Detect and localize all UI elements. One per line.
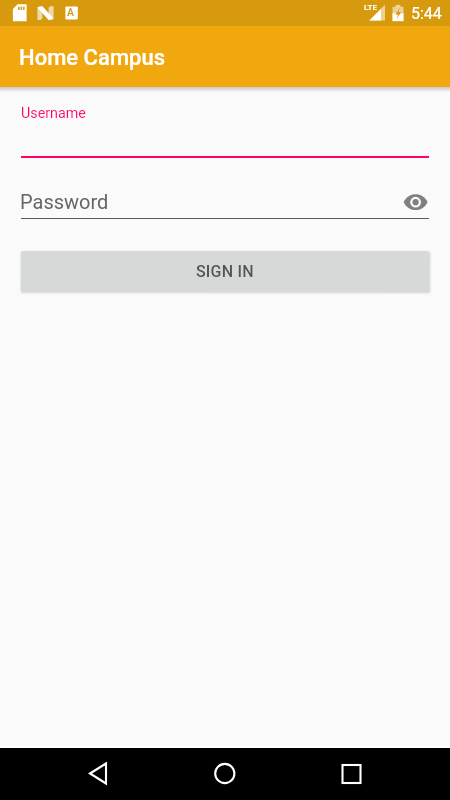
button[interactable]: Back	[76, 748, 120, 800]
button[interactable]: SIGN IN	[21, 251, 429, 292]
button[interactable]: Home	[203, 748, 247, 800]
staticText: LTE	[364, 3, 377, 12]
button[interactable]: Recent apps	[329, 748, 373, 800]
staticText: Username	[21, 105, 86, 122]
staticText: Password	[20, 190, 109, 213]
button[interactable]	[21, 186, 391, 218]
button[interactable]: Show password	[400, 187, 430, 217]
staticText: SIGN IN	[196, 262, 254, 281]
staticText: 5:44	[411, 4, 442, 23]
staticText: Home Campus	[19, 45, 166, 71]
button[interactable]	[21, 104, 429, 158]
staticText: A	[67, 6, 74, 18]
